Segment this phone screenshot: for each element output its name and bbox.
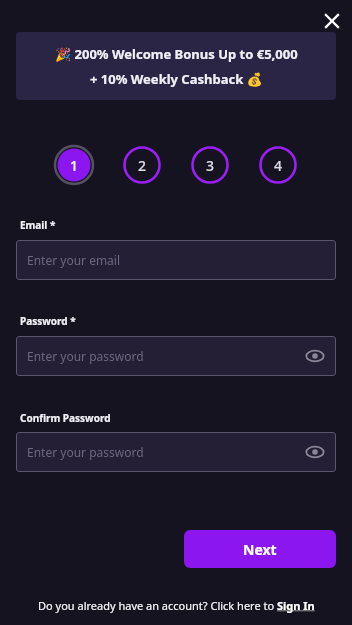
button[interactable]: Next [184, 530, 336, 568]
staticText: Email * [20, 218, 56, 232]
button[interactable]: Show password [304, 441, 326, 463]
button[interactable]: Enter your password [16, 336, 336, 376]
button[interactable]: Step 4 [258, 145, 298, 185]
button[interactable]: 🎉 200% Welcome Bonus Up to €5,000 [16, 32, 336, 100]
staticText: 3 [206, 156, 215, 175]
button[interactable]: Enter your email [16, 240, 336, 280]
button[interactable]: Enter your password [16, 432, 336, 472]
staticText: Enter your password [27, 348, 144, 364]
staticText: 4 [274, 156, 283, 175]
button[interactable]: Step 3 [190, 145, 230, 185]
staticText: 🎉 200% Welcome Bonus Up to €5,000 [55, 45, 298, 63]
staticText: Next [243, 540, 277, 559]
staticText: 2 [138, 156, 147, 175]
staticText: Password * [20, 314, 76, 328]
staticText: Enter your password [27, 444, 144, 460]
button[interactable]: Do you already have an account? Click he… [0, 590, 352, 620]
button[interactable]: Show password [304, 345, 326, 367]
button[interactable]: Step 1 [54, 145, 94, 185]
button[interactable]: Step 2 [122, 145, 162, 185]
staticText: 1 [70, 156, 79, 175]
staticText: Do you already have an account? Click he… [38, 598, 315, 613]
button[interactable]: Close [316, 5, 348, 37]
staticText: + 10% Weekly Cashback 💰 [90, 70, 263, 88]
staticText: Confirm Password [20, 411, 111, 425]
staticText: Enter your email [27, 252, 121, 268]
